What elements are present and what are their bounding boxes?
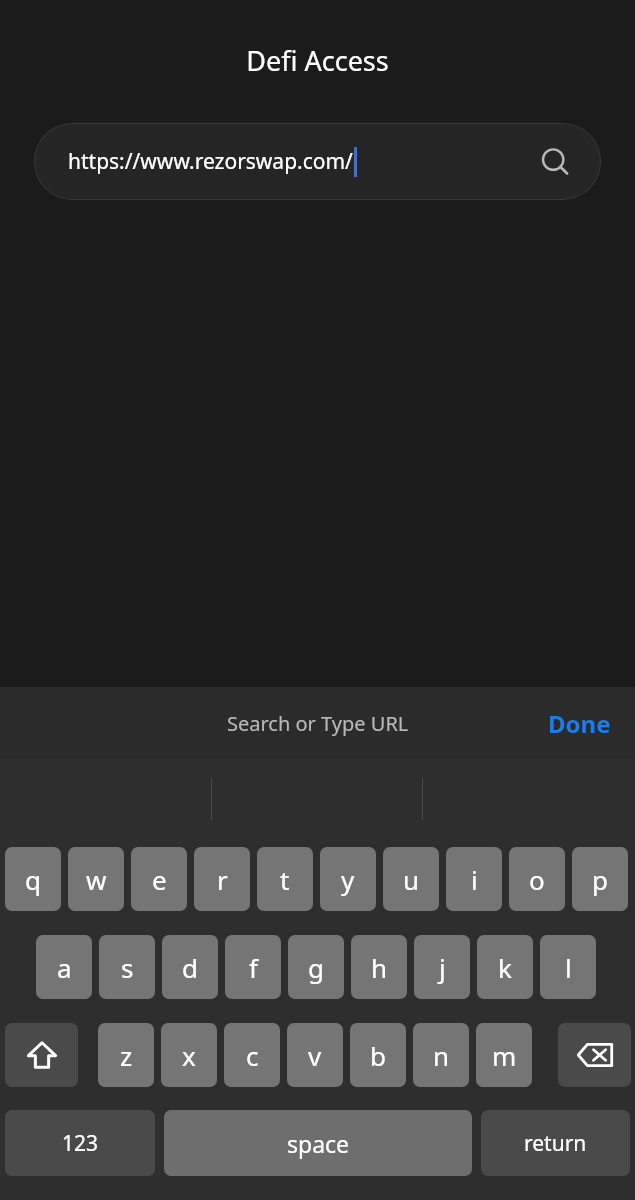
button[interactable]: q: [5, 847, 61, 911]
staticText: b: [370, 1038, 386, 1073]
button[interactable]: w: [68, 847, 124, 911]
staticText: o: [529, 862, 545, 897]
staticText: r: [217, 862, 228, 897]
staticText: p: [592, 862, 608, 897]
button[interactable]: g: [288, 935, 344, 999]
button[interactable]: e: [131, 847, 187, 911]
staticText: l: [565, 950, 572, 985]
staticText: m: [492, 1038, 517, 1073]
button[interactable]: k: [477, 935, 533, 999]
button[interactable]: Shift: [5, 1023, 78, 1087]
staticText: c: [246, 1038, 259, 1073]
staticText: h: [371, 950, 388, 985]
button[interactable]: x: [161, 1023, 217, 1087]
staticText: d: [182, 950, 198, 985]
button[interactable]: s: [99, 935, 155, 999]
staticText: g: [308, 950, 324, 985]
staticText: z: [120, 1038, 133, 1073]
staticText: t: [280, 862, 290, 897]
staticText: Done: [548, 707, 611, 740]
button[interactable]: p: [572, 847, 628, 911]
button[interactable]: d: [162, 935, 218, 999]
staticText: e: [152, 862, 167, 897]
button[interactable]: h: [351, 935, 407, 999]
staticText: y: [341, 862, 355, 897]
button[interactable]: Search: [535, 142, 575, 182]
button[interactable]: f: [225, 935, 281, 999]
staticText: u: [403, 862, 420, 897]
button[interactable]: b: [350, 1023, 406, 1087]
button[interactable]: i: [446, 847, 502, 911]
staticText: return: [524, 1129, 587, 1158]
staticText: n: [433, 1038, 450, 1073]
button[interactable]: 123: [5, 1110, 155, 1176]
staticText: v: [308, 1038, 322, 1073]
staticText: 123: [62, 1129, 99, 1158]
button[interactable]: a: [36, 935, 92, 999]
button[interactable]: Done: [538, 699, 621, 748]
button[interactable]: return: [481, 1110, 630, 1176]
staticText: space: [287, 1128, 350, 1159]
button[interactable]: y: [320, 847, 376, 911]
button[interactable]: o: [509, 847, 565, 911]
button[interactable]: z: [98, 1023, 154, 1087]
staticText: s: [121, 950, 134, 985]
button[interactable]: Backspace: [558, 1023, 631, 1087]
staticText: Defi Access: [246, 42, 389, 79]
staticText: j: [439, 950, 446, 985]
staticText: q: [25, 862, 41, 897]
staticText: i: [471, 862, 478, 897]
staticText: k: [498, 950, 512, 985]
staticText: x: [182, 1038, 196, 1073]
button[interactable]: space: [164, 1110, 472, 1176]
staticText: w: [86, 862, 107, 897]
staticText: Search or Type URL: [227, 710, 409, 737]
button[interactable]: v: [287, 1023, 343, 1087]
button[interactable]: r: [194, 847, 250, 911]
button[interactable]: t: [257, 847, 313, 911]
button[interactable]: https://www.rezorswap.com/: [34, 123, 601, 200]
button[interactable]: u: [383, 847, 439, 911]
staticText: f: [249, 950, 258, 985]
button[interactable]: j: [414, 935, 470, 999]
button[interactable]: c: [224, 1023, 280, 1087]
staticText: https://www.rezorswap.com/: [68, 147, 353, 176]
button[interactable]: l: [540, 935, 596, 999]
button[interactable]: m: [476, 1023, 532, 1087]
button[interactable]: n: [413, 1023, 469, 1087]
staticText: a: [57, 950, 72, 985]
